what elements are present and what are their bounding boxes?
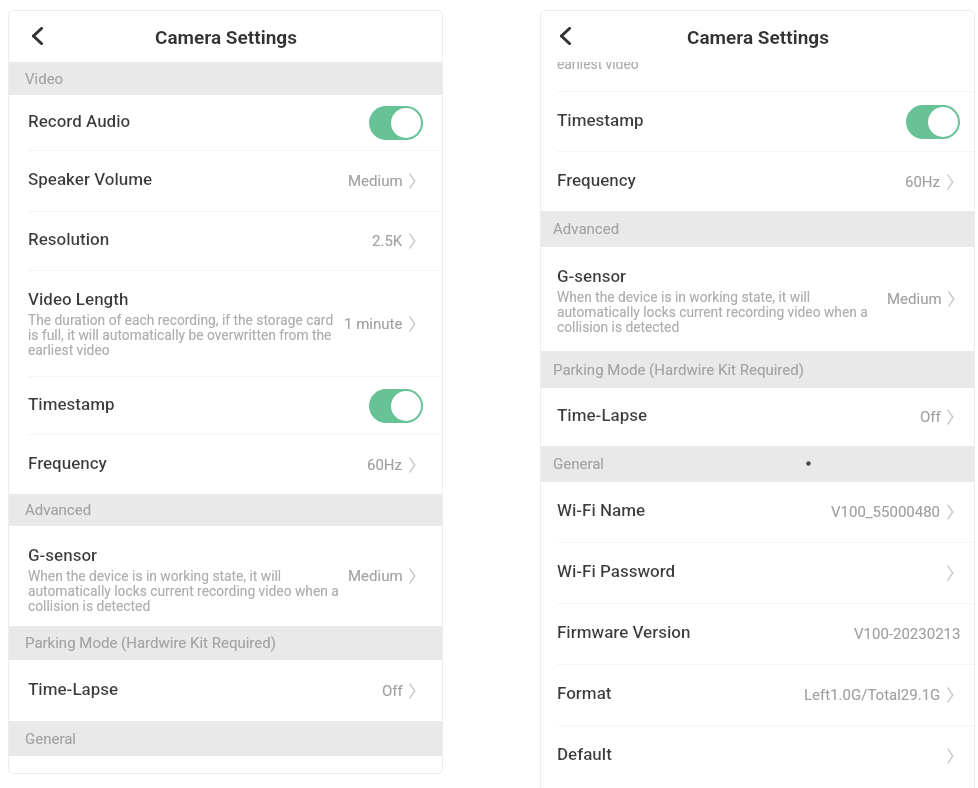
staticText: Time-Lapse: [28, 679, 119, 699]
staticText: Medium: [348, 172, 403, 190]
button[interactable]: Resolution: [8, 212, 443, 270]
staticText: 60Hz: [905, 173, 941, 191]
button[interactable]: Back: [548, 19, 582, 53]
button[interactable]: Toggle on: [906, 105, 960, 139]
staticText: Frequency: [28, 453, 107, 473]
staticText: Camera Settings: [155, 26, 297, 48]
staticText: Record Audio: [28, 111, 131, 131]
staticText: Parking Mode (Hardwire Kit Required): [25, 634, 276, 652]
staticText: Format: [557, 683, 612, 703]
staticText: 1 minute: [344, 315, 403, 333]
button[interactable]: Wi-Fi Password: [540, 543, 975, 603]
staticText: Off: [920, 408, 941, 426]
staticText: G-sensor: [557, 266, 627, 286]
button[interactable]: Back: [20, 19, 54, 53]
staticText: Wi-Fi Name: [557, 500, 646, 520]
staticText: V100-20230213: [854, 625, 961, 643]
staticText: Parking Mode (Hardwire Kit Required): [553, 361, 804, 379]
staticText: V100_55000480: [831, 503, 941, 521]
button[interactable]: G-sensor: [8, 526, 443, 626]
staticText: earliest video: [557, 56, 639, 72]
button[interactable]: Frequency: [540, 152, 975, 211]
button[interactable]: Toggle on: [369, 389, 423, 423]
button[interactable]: Record Audio: [8, 95, 443, 150]
staticText: Video Length: [28, 289, 129, 309]
staticText: Left1.0G/Total29.1G: [804, 686, 941, 704]
staticText: Wi-Fi Password: [557, 561, 676, 581]
staticText: Speaker Volume: [28, 169, 153, 189]
button[interactable]: Timestamp: [540, 92, 975, 151]
button[interactable]: Toggle on: [369, 106, 423, 140]
staticText: Medium: [887, 290, 942, 308]
staticText: 60Hz: [367, 456, 403, 474]
staticText: General: [553, 455, 605, 473]
button[interactable]: Time-Lapse: [8, 660, 443, 721]
staticText: The duration of each recording, if the s…: [28, 312, 338, 358]
button[interactable]: Frequency: [8, 435, 443, 494]
button[interactable]: Video Length: [8, 271, 443, 376]
staticText: Frequency: [557, 170, 636, 190]
button[interactable]: G-sensor: [540, 247, 975, 351]
staticText: Firmware Version: [557, 622, 691, 642]
staticText: Video: [25, 70, 64, 88]
button[interactable]: Wi-Fi Name: [540, 482, 975, 542]
staticText: G-sensor: [28, 545, 98, 565]
staticText: When the device is in working state, it …: [28, 568, 342, 614]
button[interactable]: Speaker Volume: [8, 151, 443, 211]
button[interactable]: Default: [540, 726, 975, 786]
staticText: Time-Lapse: [557, 405, 648, 425]
button[interactable]: Timestamp: [8, 377, 443, 434]
staticText: Default: [557, 744, 612, 764]
staticText: Medium: [348, 567, 403, 585]
staticText: General: [25, 730, 77, 748]
staticText: Resolution: [28, 229, 110, 249]
staticText: 2.5K: [372, 232, 403, 250]
button[interactable]: Time-Lapse: [540, 388, 975, 446]
button[interactable]: Firmware Version: [540, 604, 975, 664]
staticText: Advanced: [25, 501, 92, 519]
staticText: When the device is in working state, it …: [557, 289, 873, 335]
staticText: Timestamp: [557, 110, 644, 130]
staticText: Timestamp: [28, 394, 115, 414]
staticText: Camera Settings: [687, 26, 829, 48]
button[interactable]: Format: [540, 665, 975, 725]
staticText: Advanced: [553, 220, 620, 238]
staticText: Off: [382, 682, 403, 700]
